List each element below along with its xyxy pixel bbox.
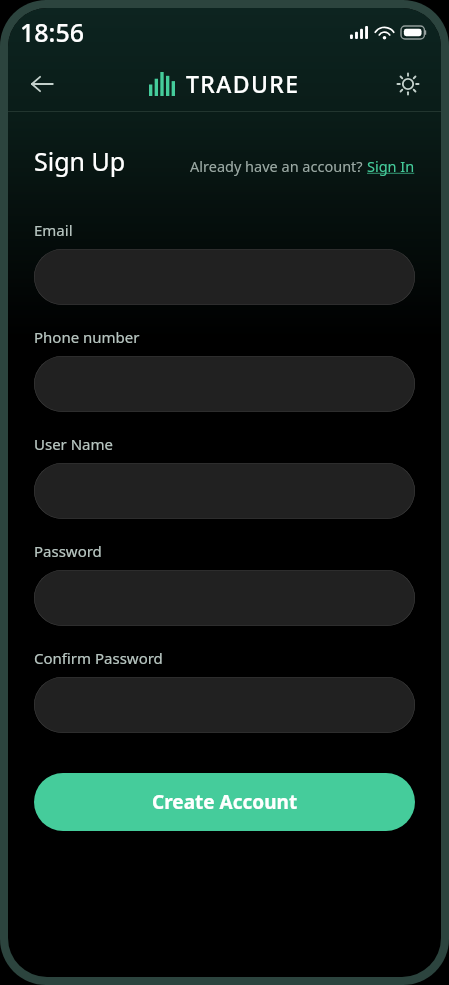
staticText: Confirm Password (34, 648, 163, 668)
button[interactable]: Already have an account? (190, 156, 415, 176)
button[interactable]: Toggle theme (387, 63, 429, 105)
button[interactable]: Email (34, 249, 415, 305)
button[interactable]: Confirm Password (34, 677, 415, 733)
staticText: Already have an account? (190, 156, 367, 176)
staticText: Password (34, 541, 102, 561)
staticText: TRADURE (186, 68, 300, 99)
staticText: Email (34, 220, 73, 240)
button[interactable]: Phone number (34, 356, 415, 412)
staticText: Sign In (367, 156, 415, 176)
staticText: User Name (34, 434, 114, 454)
staticText: Create Account (152, 789, 298, 815)
button[interactable]: Back (20, 62, 64, 106)
staticText: Sign Up (34, 144, 126, 178)
button[interactable]: Password (34, 570, 415, 626)
staticText: Phone number (34, 327, 140, 347)
button[interactable]: Create Account (34, 773, 415, 831)
button[interactable]: User Name (34, 463, 415, 519)
staticText: 18:56 (20, 15, 85, 49)
